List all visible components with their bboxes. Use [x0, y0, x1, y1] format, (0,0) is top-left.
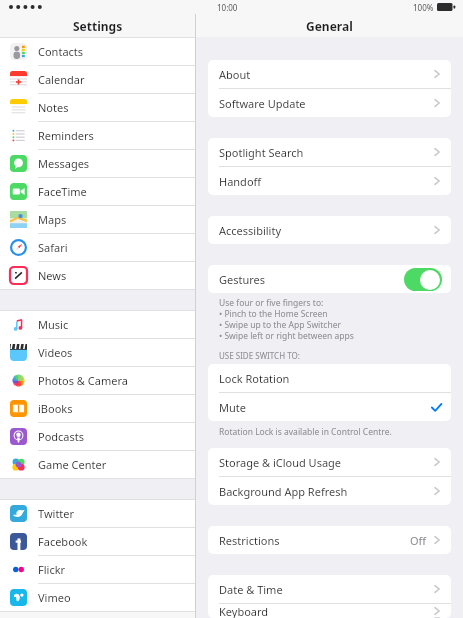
button[interactable]: Restrictions — [208, 526, 451, 554]
staticText: Keyboard — [219, 604, 269, 618]
button[interactable]: Background App Refresh — [208, 477, 451, 505]
staticText: Photos & Camera — [38, 373, 128, 388]
staticText: FaceTime — [38, 184, 87, 199]
staticText: General — [306, 18, 353, 34]
staticText: Lock Rotation — [219, 371, 290, 386]
staticText: 10:00 — [217, 2, 238, 13]
staticText: Date & Time — [219, 582, 283, 597]
staticText: Software Update — [219, 96, 306, 111]
staticText: Notes — [38, 100, 69, 115]
staticText: Calendar — [38, 72, 85, 87]
button[interactable]: Twitter — [0, 500, 195, 528]
staticText: Videos — [38, 345, 73, 360]
staticText: Podcasts — [38, 429, 85, 444]
staticText: Handoff — [219, 174, 262, 189]
button[interactable]: Mute — [208, 393, 451, 421]
staticText: Background App Refresh — [219, 484, 348, 499]
staticText: Spotlight Search — [219, 145, 304, 160]
staticText: News — [38, 268, 67, 283]
button[interactable]: Gestures — [208, 265, 451, 293]
button[interactable]: Music — [0, 311, 195, 339]
staticText: Music — [38, 317, 69, 332]
button[interactable]: Contacts — [0, 38, 195, 66]
button[interactable]: News — [0, 262, 195, 289]
staticText: Gestures — [219, 272, 266, 287]
button[interactable]: Maps — [0, 206, 195, 234]
staticText: iBooks — [38, 401, 73, 416]
button[interactable]: Flickr — [0, 556, 195, 584]
staticText: Flickr — [38, 562, 66, 577]
button[interactable]: FaceTime — [0, 178, 195, 206]
staticText: Off — [410, 533, 427, 548]
staticText: Twitter — [38, 506, 75, 521]
button[interactable]: Keyboard — [208, 604, 451, 618]
staticText: About — [219, 67, 251, 82]
button[interactable]: Facebook — [0, 528, 195, 556]
button[interactable]: Calendar — [0, 66, 195, 94]
button[interactable]: Spotlight Search — [208, 138, 451, 167]
staticText: Reminders — [38, 128, 94, 143]
staticText: USE SIDE SWITCH TO: — [219, 350, 300, 361]
staticText: Facebook — [38, 534, 88, 549]
button[interactable]: Messages — [0, 150, 195, 178]
staticText: Vimeo — [38, 590, 71, 605]
staticText: Game Center — [38, 457, 107, 472]
button[interactable]: Gestures toggle — [404, 268, 442, 291]
button[interactable]: Accessibility — [208, 216, 451, 244]
staticText: Restrictions — [219, 533, 280, 548]
staticText: 100% — [413, 2, 434, 13]
button[interactable]: Photos & Camera — [0, 367, 195, 395]
button[interactable]: Software Update — [208, 89, 451, 117]
staticText: Storage & iCloud Usage — [219, 455, 342, 470]
staticText: Maps — [38, 212, 67, 227]
button[interactable]: About — [208, 60, 451, 89]
button[interactable]: iBooks — [0, 395, 195, 423]
staticText: Contacts — [38, 44, 84, 59]
button[interactable]: Storage & iCloud Usage — [208, 448, 451, 477]
staticText: Rotation Lock is available in Control Ce… — [219, 426, 392, 438]
staticText: Messages — [38, 156, 90, 171]
staticText: Mute — [219, 400, 246, 415]
button[interactable]: Handoff — [208, 167, 451, 195]
button[interactable]: Reminders — [0, 122, 195, 150]
staticText: Use four or five fingers to: • Pinch to … — [219, 297, 354, 341]
staticText: Safari — [38, 240, 68, 255]
staticText: Settings — [73, 18, 123, 34]
button[interactable]: Notes — [0, 94, 195, 122]
button[interactable]: Vimeo — [0, 584, 195, 611]
button[interactable]: Game Center — [0, 451, 195, 478]
button[interactable]: Podcasts — [0, 423, 195, 451]
button[interactable]: Safari — [0, 234, 195, 262]
button[interactable]: Videos — [0, 339, 195, 367]
staticText: Accessibility — [219, 223, 282, 238]
button[interactable]: Lock Rotation — [208, 364, 451, 393]
button[interactable]: Date & Time — [208, 575, 451, 604]
